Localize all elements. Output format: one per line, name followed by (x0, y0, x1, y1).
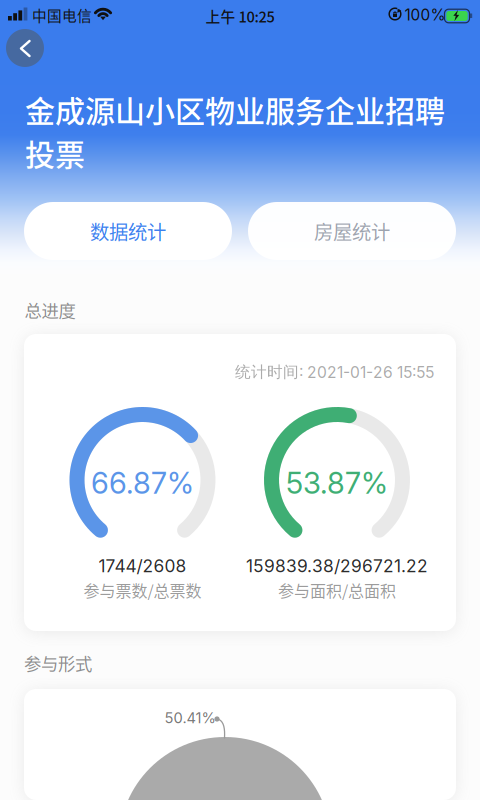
staticText: 参与面积/总面积 (278, 578, 396, 602)
button[interactable]: 房屋统计 (248, 202, 456, 260)
staticText: 统计时间: 2021-01-26 15:55 (235, 362, 434, 382)
staticText: 房屋统计 (314, 217, 390, 245)
button[interactable]: 返回 (2, 25, 48, 71)
staticText: 金成源山小区物业服务企业招聘投票 (25, 88, 445, 174)
staticText: 100% (404, 6, 445, 24)
staticText: 53.87% (286, 465, 388, 501)
button[interactable]: 数据统计 (24, 202, 232, 260)
staticText: 1744/2608 (98, 555, 186, 576)
staticText: 参与票数/总票数 (83, 578, 201, 602)
staticText: 159839.38/296721.22 (246, 555, 428, 576)
staticText: 中国电信 (32, 4, 92, 26)
staticText: 上午 10:25 (205, 5, 274, 27)
staticText: 66.87% (91, 465, 194, 501)
staticText: 50.41% (164, 709, 215, 727)
staticText: 总进度 (24, 297, 75, 323)
staticText: 参与形式 (24, 650, 92, 676)
staticText: 数据统计 (90, 217, 166, 245)
